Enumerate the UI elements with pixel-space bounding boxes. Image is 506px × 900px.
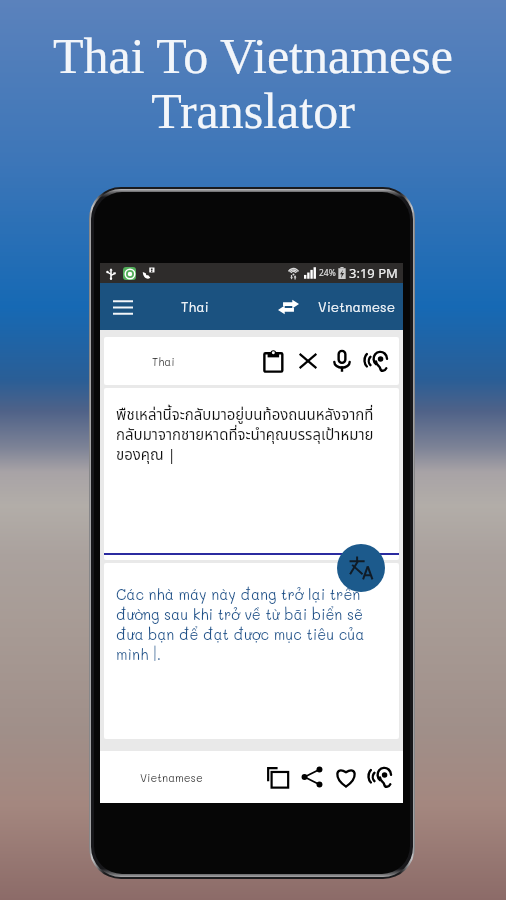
- button[interactable]: Listen: [359, 344, 393, 378]
- staticText: Thai: [152, 354, 175, 368]
- button[interactable]: Vietnamese: [309, 283, 405, 330]
- button[interactable]: Clear text: [291, 344, 325, 378]
- button[interactable]: Translate: [337, 544, 385, 592]
- staticText: 3:19 PM: [349, 264, 398, 282]
- button[interactable]: Copy: [261, 760, 295, 794]
- button[interactable]: Share: [295, 760, 329, 794]
- button[interactable]: Menu: [103, 287, 143, 327]
- button[interactable]: Favorite: [329, 760, 363, 794]
- button[interactable]: Swap languages: [268, 287, 308, 327]
- staticText: Translator: [151, 83, 355, 138]
- staticText: Thai To Vietnamese: [53, 28, 453, 83]
- button[interactable]: Paste from clipboard: [257, 344, 291, 378]
- staticText: Thai: [181, 298, 209, 316]
- button[interactable]: Listen: [363, 760, 397, 794]
- staticText: พืชเหล่านี้จะกลับมาอยู่บนท้องถนนหลังจากท…: [116, 404, 391, 467]
- staticText: 24%: [319, 267, 336, 279]
- staticText: Vietnamese: [318, 298, 396, 316]
- button[interactable]: Thai: [160, 283, 230, 330]
- button[interactable]: Voice input: [325, 344, 359, 378]
- staticText: Các nhà máy này đang trở lại trên đường …: [116, 585, 378, 664]
- staticText: Vietnamese: [140, 770, 203, 784]
